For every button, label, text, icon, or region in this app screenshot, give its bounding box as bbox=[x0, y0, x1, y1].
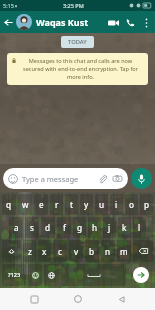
button[interactable]: p bbox=[140, 194, 153, 215]
button[interactable]: More options bbox=[139, 15, 154, 30]
staticText: l bbox=[138, 222, 141, 233]
button[interactable]: y bbox=[80, 194, 93, 215]
staticText: w bbox=[22, 199, 29, 210]
staticText: g bbox=[77, 222, 83, 233]
button[interactable]: z bbox=[23, 240, 36, 262]
button[interactable]: b bbox=[85, 240, 99, 262]
button[interactable]: Home bbox=[68, 289, 88, 309]
button[interactable]: f bbox=[57, 217, 71, 238]
staticText: t bbox=[70, 199, 73, 210]
button[interactable]: q bbox=[2, 194, 16, 215]
button[interactable]: Video call bbox=[105, 14, 122, 31]
staticText: n bbox=[105, 246, 111, 257]
button[interactable]: Waqas Kust bbox=[36, 16, 105, 28]
staticText: 5:15 bbox=[3, 2, 14, 9]
button[interactable]: Emoji bbox=[3, 168, 128, 189]
button[interactable]: u bbox=[95, 194, 108, 215]
staticText: o bbox=[129, 199, 134, 210]
staticText: c bbox=[58, 246, 62, 257]
button[interactable]: n bbox=[101, 240, 115, 262]
staticText: y bbox=[84, 199, 89, 210]
staticText: i bbox=[115, 199, 118, 210]
staticText: v bbox=[74, 246, 79, 257]
staticText: h bbox=[92, 222, 98, 233]
button[interactable]: t bbox=[65, 194, 78, 215]
button[interactable]: Recents bbox=[24, 289, 44, 309]
button[interactable]: Profile photo bbox=[16, 14, 32, 30]
button[interactable]: d bbox=[41, 217, 55, 238]
button[interactable]: Backspace bbox=[133, 240, 153, 262]
staticText: q bbox=[6, 199, 12, 210]
button[interactable]: ?123 bbox=[2, 264, 26, 286]
button[interactable]: j bbox=[103, 217, 116, 238]
button[interactable]: o bbox=[125, 194, 138, 215]
button[interactable]: m bbox=[117, 240, 131, 262]
button[interactable]: Enter bbox=[133, 267, 149, 283]
button[interactable]: c bbox=[53, 240, 67, 262]
button[interactable]: Language bbox=[44, 264, 59, 286]
staticText: a bbox=[14, 222, 19, 233]
button[interactable]: Camera bbox=[112, 173, 123, 184]
button[interactable]: Call bbox=[122, 14, 139, 31]
staticText: u bbox=[99, 199, 105, 210]
button[interactable]: i bbox=[110, 194, 123, 215]
staticText: Type a message bbox=[22, 174, 79, 184]
staticText: d bbox=[45, 222, 51, 233]
button[interactable]: Attach bbox=[97, 173, 108, 184]
button[interactable]: Voice message bbox=[131, 168, 152, 189]
button[interactable]: Space bbox=[61, 264, 126, 286]
staticText: e bbox=[39, 199, 44, 210]
button[interactable]: r bbox=[50, 194, 63, 215]
staticText: Messages to this chat and calls are now … bbox=[18, 57, 143, 81]
staticText: m bbox=[120, 246, 128, 257]
staticText: 3:25 PM bbox=[63, 2, 84, 9]
staticText: z bbox=[28, 246, 32, 257]
staticText: Waqas Kust bbox=[36, 16, 89, 28]
button[interactable]: s bbox=[25, 217, 39, 238]
button[interactable]: h bbox=[88, 217, 101, 238]
button[interactable]: Messages to this chat and calls are now … bbox=[7, 53, 148, 85]
staticText: j bbox=[108, 222, 111, 233]
button[interactable]: g bbox=[73, 217, 86, 238]
other: Emoji bbox=[8, 174, 18, 184]
staticText: r bbox=[55, 199, 59, 210]
button[interactable]: v bbox=[69, 240, 83, 262]
staticText: k bbox=[122, 222, 127, 233]
staticText: b bbox=[89, 246, 95, 257]
button[interactable]: Shift bbox=[2, 240, 21, 262]
button[interactable]: e bbox=[34, 194, 48, 215]
staticText: p bbox=[144, 199, 150, 210]
button[interactable]: x bbox=[38, 240, 51, 262]
button[interactable]: TODAY bbox=[61, 36, 94, 48]
button[interactable]: a bbox=[9, 217, 23, 238]
staticText: ?123 bbox=[8, 271, 21, 279]
button[interactable]: Emoji bbox=[28, 264, 42, 286]
staticText: s bbox=[30, 222, 34, 233]
staticText: f bbox=[63, 222, 66, 233]
button[interactable]: Back bbox=[0, 14, 16, 30]
staticText: TODAY bbox=[68, 38, 87, 46]
button[interactable]: w bbox=[18, 194, 32, 215]
button[interactable]: l bbox=[133, 217, 146, 238]
button[interactable]: k bbox=[118, 217, 131, 238]
staticText: x bbox=[42, 246, 47, 257]
button[interactable]: Back bbox=[111, 289, 131, 309]
